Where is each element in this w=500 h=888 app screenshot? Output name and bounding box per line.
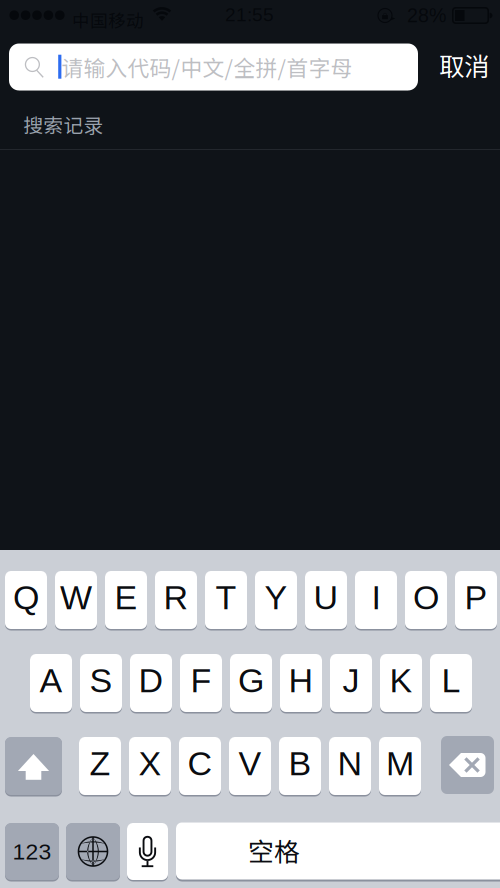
staticText: 请输入代码/中文/全拼/首字母 <box>62 51 353 82</box>
button[interactable]: O <box>405 570 447 630</box>
staticText: H <box>288 661 313 699</box>
staticText: 空格 <box>248 832 300 869</box>
staticText: Z <box>89 744 110 782</box>
button[interactable]: I <box>355 570 397 630</box>
staticText: N <box>337 744 362 782</box>
button[interactable]: N <box>329 736 371 796</box>
button[interactable]: G <box>230 653 272 713</box>
button[interactable]: L <box>430 653 472 713</box>
button[interactable]: T <box>205 570 247 630</box>
button[interactable]: X <box>129 736 171 796</box>
staticText: E <box>114 578 137 616</box>
button[interactable]: V <box>229 736 271 796</box>
button[interactable]: Next keyboard <box>66 822 120 881</box>
button[interactable]: M <box>379 736 421 796</box>
staticText: 123 <box>12 839 51 864</box>
button[interactable]: Z <box>79 736 121 796</box>
staticText: 21:55 <box>225 4 274 25</box>
button[interactable]: U <box>305 570 347 630</box>
staticText: T <box>215 578 236 616</box>
staticText: S <box>89 661 112 699</box>
button[interactable]: Dictation <box>127 822 168 881</box>
staticText: 取消 <box>439 47 489 83</box>
staticText: F <box>190 661 211 699</box>
button[interactable]: Shift <box>5 736 62 796</box>
button[interactable]: E <box>105 570 147 630</box>
staticText: A <box>39 661 62 699</box>
staticText: X <box>138 744 161 782</box>
button[interactable]: F <box>180 653 222 713</box>
button[interactable]: H <box>280 653 322 713</box>
staticText: M <box>386 744 414 782</box>
staticText: V <box>238 744 261 782</box>
staticText: 搜索记录 <box>23 110 103 139</box>
button[interactable]: Delete <box>441 736 494 794</box>
button[interactable]: D <box>130 653 172 713</box>
staticText: U <box>313 578 338 616</box>
button[interactable]: P <box>455 570 497 630</box>
button[interactable]: B <box>279 736 321 796</box>
staticText: 中国移动 <box>72 7 144 32</box>
staticText: Q <box>13 578 39 616</box>
button[interactable]: Numbers <box>5 822 59 881</box>
button[interactable]: 空格 <box>176 822 500 881</box>
staticText: K <box>389 661 412 699</box>
staticText: R <box>163 578 188 616</box>
button[interactable]: C <box>179 736 221 796</box>
staticText: W <box>60 578 92 616</box>
button[interactable]: W <box>55 570 97 630</box>
button[interactable]: A <box>30 653 72 713</box>
staticText: L <box>441 661 460 699</box>
button[interactable]: Y <box>255 570 297 630</box>
staticText: I <box>371 578 380 616</box>
staticText: G <box>238 661 264 699</box>
staticText: C <box>187 744 212 782</box>
staticText: J <box>342 661 359 699</box>
button[interactable]: Q <box>5 570 47 630</box>
button[interactable]: K <box>380 653 422 713</box>
button[interactable]: 取消 <box>428 41 500 88</box>
staticText: B <box>288 744 311 782</box>
staticText: O <box>413 578 439 616</box>
button[interactable]: R <box>155 570 197 630</box>
staticText: D <box>138 661 163 699</box>
staticText: 28% <box>407 4 446 26</box>
staticText: P <box>464 578 487 616</box>
button[interactable]: S <box>80 653 122 713</box>
button[interactable]: J <box>330 653 372 713</box>
staticText: Y <box>264 578 287 616</box>
